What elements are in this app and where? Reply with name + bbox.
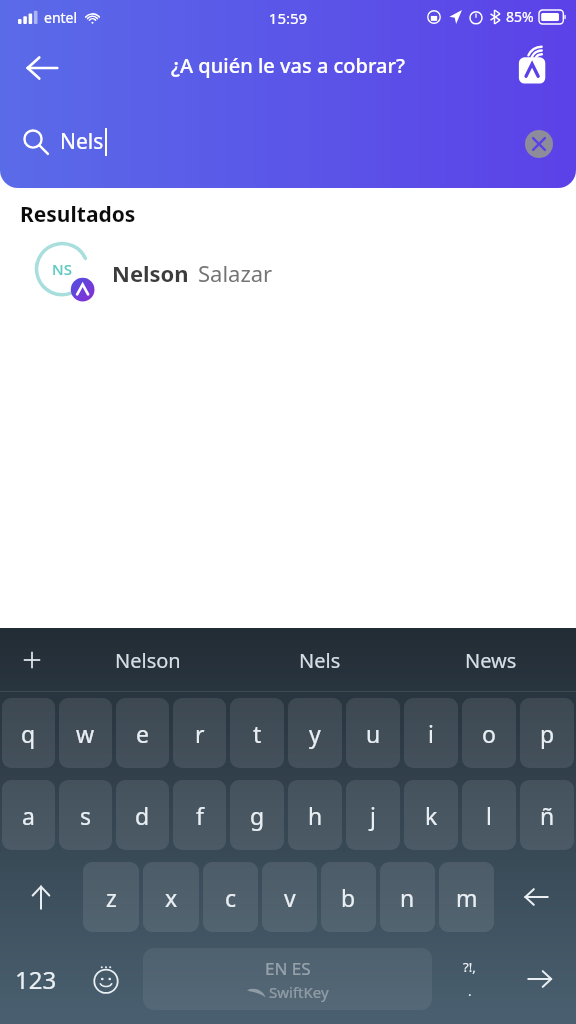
button[interactable]: a <box>2 780 55 850</box>
button[interactable]: Shift <box>0 862 81 932</box>
button[interactable]: 123 <box>0 944 72 1014</box>
button[interactable]: c <box>203 862 258 932</box>
staticText: SwiftKey <box>269 982 329 1002</box>
button[interactable]: Back <box>14 40 70 96</box>
button[interactable]: Punctuation <box>436 944 503 1014</box>
button[interactable]: s <box>59 780 112 850</box>
button[interactable]: Nelson <box>62 628 234 692</box>
button[interactable]: i <box>404 698 458 768</box>
staticText: l <box>486 800 492 831</box>
button[interactable]: e <box>116 698 169 768</box>
button[interactable]: Add <box>6 628 58 692</box>
staticText: Nelson <box>115 647 181 674</box>
staticText: n <box>400 882 415 913</box>
button[interactable]: k <box>404 780 458 850</box>
staticText: Resultados <box>20 200 136 229</box>
button[interactable]: r <box>173 698 226 768</box>
staticText: 85% <box>506 7 534 26</box>
staticText: x <box>165 882 178 913</box>
button[interactable]: p <box>520 698 574 768</box>
staticText: f <box>196 800 204 831</box>
staticText: z <box>106 882 117 913</box>
staticText: entel <box>44 8 78 27</box>
staticText: o <box>482 718 496 749</box>
staticText: ñ <box>540 800 555 831</box>
button[interactable]: Enter <box>503 944 576 1014</box>
staticText: ¿A quién le vas a cobrar? <box>0 52 576 79</box>
button[interactable]: y <box>288 698 342 768</box>
button[interactable]: Clear <box>520 125 558 163</box>
staticText: t <box>253 718 262 749</box>
button[interactable]: v <box>262 862 317 932</box>
button[interactable]: ñ <box>520 780 574 850</box>
button[interactable]: Nels <box>234 628 405 692</box>
staticText: c <box>225 882 237 913</box>
button[interactable]: w <box>59 698 112 768</box>
staticText: ?!, <box>463 958 476 976</box>
staticText: EN ES <box>265 957 311 980</box>
button[interactable]: n <box>380 862 435 932</box>
staticText: . <box>468 982 472 1000</box>
staticText: News <box>465 647 517 674</box>
staticText: d <box>135 800 150 831</box>
button[interactable]: Backspace <box>496 862 576 932</box>
button[interactable]: x <box>143 862 199 932</box>
staticText: i <box>428 718 434 749</box>
button[interactable]: u <box>346 698 400 768</box>
staticText: Nels <box>299 647 341 674</box>
staticText: y <box>309 718 321 749</box>
button[interactable]: NS <box>0 237 576 309</box>
button[interactable]: d <box>116 780 169 850</box>
staticText: r <box>195 718 205 749</box>
button[interactable]: News <box>405 628 576 692</box>
staticText: NS <box>52 259 72 279</box>
staticText: 15:59 <box>0 8 576 28</box>
staticText: s <box>80 800 92 831</box>
staticText: h <box>308 800 323 831</box>
staticText: u <box>366 718 381 749</box>
button[interactable]: EN ES <box>143 948 432 1010</box>
staticText: v <box>284 882 296 913</box>
button[interactable]: g <box>230 780 284 850</box>
staticText: a <box>22 800 35 831</box>
button[interactable]: q <box>2 698 55 768</box>
staticText: p <box>540 718 555 749</box>
button[interactable]: l <box>462 780 516 850</box>
staticText: Nelson <box>112 258 189 288</box>
staticText: g <box>250 800 265 831</box>
button[interactable]: o <box>462 698 516 768</box>
staticText: m <box>456 882 478 913</box>
staticText: b <box>341 882 356 913</box>
staticText: k <box>425 800 438 831</box>
staticText: e <box>136 718 149 749</box>
button[interactable]: Emoji <box>72 944 139 1014</box>
staticText: 123 <box>15 963 57 996</box>
button[interactable]: m <box>439 862 494 932</box>
staticText: q <box>21 718 36 749</box>
button[interactable]: h <box>288 780 342 850</box>
button[interactable]: j <box>346 780 400 850</box>
staticText: Salazar <box>198 258 273 288</box>
staticText: w <box>76 718 95 749</box>
staticText: Nels <box>60 127 104 156</box>
button[interactable]: z <box>83 862 139 932</box>
button[interactable]: b <box>321 862 376 932</box>
staticText: j <box>370 800 376 831</box>
button[interactable]: NFC <box>512 38 568 94</box>
button[interactable]: t <box>230 698 284 768</box>
button[interactable]: f <box>173 780 226 850</box>
